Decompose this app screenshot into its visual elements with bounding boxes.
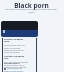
staticText: Black porn [3, 1, 60, 10]
button[interactable]: Read more about this topic [4, 69, 28, 72]
staticText: Lorem ipsum dolor sit amet consectetur a… [4, 44, 28, 53]
staticText: Quis nostrud exercitation ullamco labori… [4, 61, 28, 68]
staticText: Section heading here [4, 37, 28, 43]
staticText: Another heading line [4, 54, 28, 60]
button[interactable] [1, 21, 38, 37]
staticText: Related topics [4, 62, 20, 65]
button[interactable]: First related link [4, 67, 28, 70]
staticText: and more to browse and explore online ri… [4, 8, 58, 14]
staticText: First related link [7, 67, 23, 70]
